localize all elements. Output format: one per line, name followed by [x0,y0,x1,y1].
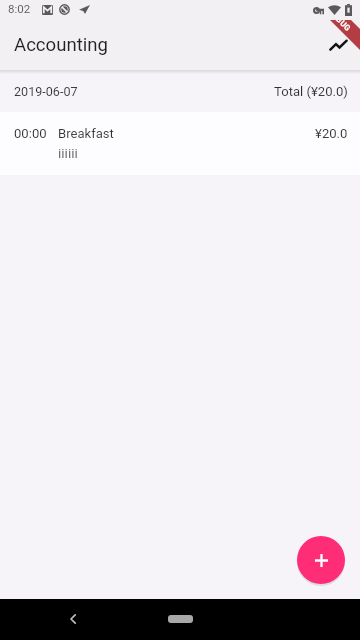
staticText: iiiiii [58,145,78,161]
button[interactable]: Add record [297,536,345,584]
staticText: Total (¥20.0) [274,84,348,99]
button[interactable]: Back [57,603,89,635]
staticText: 2019-06-07 [14,84,78,99]
staticText: 8:02 [8,2,31,15]
button[interactable]: Statistics [316,23,360,67]
staticText: 00:00 [14,126,47,141]
button[interactable]: 2019-06-07 [0,70,360,112]
button[interactable]: Home [168,615,193,623]
button[interactable]: 00:00 [0,112,360,175]
staticText: Accounting [14,34,109,56]
staticText: DEBUG [327,7,353,33]
staticText: Breakfast [58,126,114,141]
staticText: ¥20.0 [315,126,348,141]
